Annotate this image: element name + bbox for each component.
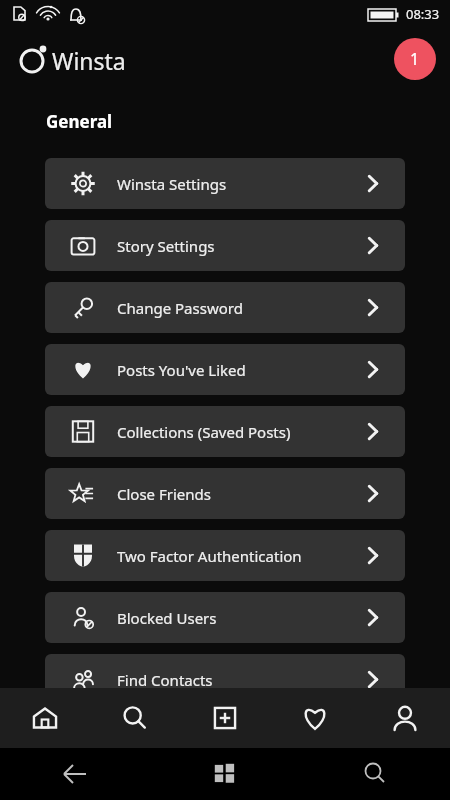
staticText: 08:33 <box>406 5 440 23</box>
staticText: General <box>46 110 113 133</box>
button[interactable]: Winsta Settings <box>45 158 405 209</box>
button[interactable]: Search <box>90 688 180 748</box>
button[interactable]: Activity <box>270 688 360 748</box>
button[interactable]: Story Settings <box>45 220 405 271</box>
staticText: Change Password <box>117 298 243 318</box>
staticText: Story Settings <box>117 236 215 256</box>
staticText: Winsta Settings <box>117 174 227 194</box>
button[interactable]: Posts You've Liked <box>45 344 405 395</box>
button[interactable]: Find Contacts <box>45 654 405 705</box>
button[interactable]: Change Password <box>45 282 405 333</box>
staticText: Posts You've Liked <box>117 360 246 380</box>
button[interactable]: Start <box>150 748 300 800</box>
staticText: Find Contacts <box>117 670 213 690</box>
button[interactable]: Profile <box>360 688 450 748</box>
staticText: 1 <box>410 48 420 70</box>
staticText: Winsta <box>52 45 126 76</box>
button[interactable]: New post <box>180 688 270 748</box>
staticText: Close Friends <box>117 484 211 504</box>
button[interactable]: Close Friends <box>45 468 405 519</box>
staticText: Two Factor Authentication <box>117 546 302 566</box>
button[interactable]: Blocked Users <box>45 592 405 643</box>
button[interactable]: Back <box>0 748 150 800</box>
button[interactable]: Notifications <box>394 38 436 80</box>
staticText: Collections (Saved Posts) <box>117 422 291 442</box>
button[interactable]: Two Factor Authentication <box>45 530 405 581</box>
button[interactable]: Collections (Saved Posts) <box>45 406 405 457</box>
staticText: Blocked Users <box>117 608 217 628</box>
button[interactable]: Home <box>0 688 90 748</box>
button[interactable]: Search <box>300 748 450 800</box>
